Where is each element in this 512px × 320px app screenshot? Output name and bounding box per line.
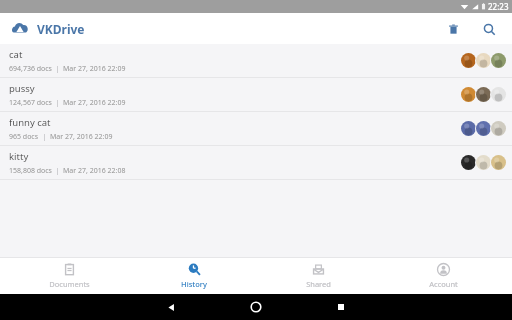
staticText: Mar 27, 2016 22:09 — [50, 132, 113, 142]
button[interactable]: Search — [476, 16, 502, 42]
staticText: Mar 27, 2016 22:09 — [63, 64, 126, 74]
staticText: 965 docs — [9, 132, 39, 142]
staticText: Account — [429, 279, 458, 289]
staticText: funny cat — [9, 116, 51, 129]
button[interactable]: Home — [236, 294, 276, 320]
button[interactable]: Documents — [14, 257, 124, 294]
button[interactable]: Delete — [440, 16, 466, 42]
staticText: 124,567 docs — [9, 98, 52, 108]
staticText: 158,808 docs — [9, 166, 52, 176]
staticText: cat — [9, 48, 23, 61]
button[interactable]: Account — [388, 257, 498, 294]
button[interactable]: Back — [151, 294, 191, 320]
button[interactable]: funny cat — [0, 112, 512, 146]
button[interactable]: Recent apps — [321, 294, 361, 320]
staticText: 694,736 docs — [9, 64, 52, 74]
button[interactable]: pussy — [0, 78, 512, 112]
button[interactable]: cat — [0, 44, 512, 78]
button[interactable]: Shared — [263, 257, 373, 294]
staticText: kitty — [9, 150, 29, 163]
button[interactable]: History — [139, 257, 249, 294]
staticText: 22:23 — [488, 1, 509, 12]
staticText: pussy — [9, 82, 35, 95]
staticText: Mar 27, 2016 22:09 — [63, 98, 126, 108]
staticText: Shared — [306, 279, 331, 289]
button[interactable]: kitty — [0, 146, 512, 180]
staticText: History — [181, 279, 207, 289]
staticText: Documents — [49, 279, 90, 289]
staticText: Mar 27, 2016 22:08 — [63, 166, 126, 176]
staticText: VKDrive — [37, 21, 85, 37]
